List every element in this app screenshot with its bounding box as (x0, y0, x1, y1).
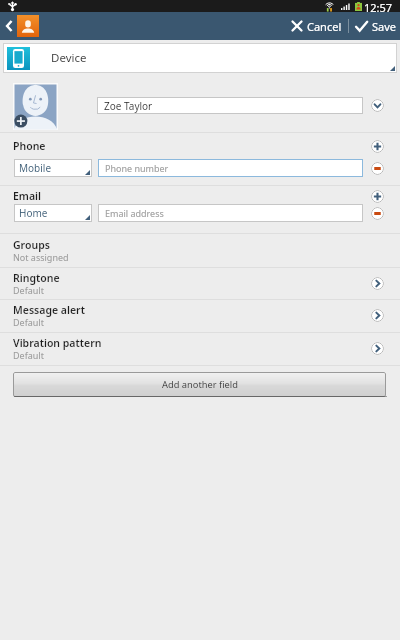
button[interactable]: Zoe Taylor (97, 97, 363, 114)
staticText: Message alert (13, 303, 85, 317)
button[interactable]: Cancel (283, 12, 348, 40)
button[interactable]: Home (14, 204, 92, 222)
button[interactable]: Add contact photo (13, 83, 58, 130)
staticText: Add another field (162, 378, 238, 391)
staticText: Save (372, 19, 397, 34)
staticText: Default (13, 316, 44, 328)
staticText: Ringtone (13, 271, 60, 285)
button[interactable]: Open Message alert (371, 309, 384, 322)
staticText: Vibration pattern (13, 336, 102, 350)
button[interactable]: Remove email (371, 207, 384, 220)
button[interactable]: Groups (0, 234, 400, 266)
button[interactable]: Add email (371, 190, 384, 203)
staticText: Not assigned (13, 251, 69, 263)
staticText: Zoe Taylor (104, 99, 153, 113)
staticText: Email address (105, 207, 164, 219)
button[interactable]: Open Vibration pattern (371, 342, 384, 355)
button[interactable]: Ringtone (0, 267, 400, 299)
button[interactable]: Save (349, 12, 400, 40)
staticText: Default (13, 349, 44, 361)
button[interactable]: Email address (98, 204, 363, 222)
button[interactable]: Device (3, 43, 397, 73)
staticText: Device (51, 50, 87, 66)
staticText: Groups (13, 238, 50, 252)
button[interactable]: Message alert (0, 299, 400, 331)
button[interactable]: Add phone (371, 140, 384, 153)
staticText: Email (13, 189, 42, 203)
staticText: Home (19, 206, 48, 220)
button[interactable]: Remove phone (371, 162, 384, 175)
button[interactable]: Back (0, 12, 17, 40)
button[interactable]: Open Ringtone (371, 277, 384, 290)
staticText: Phone number (105, 162, 169, 174)
staticText: Phone (13, 139, 46, 153)
staticText: 12:57 (364, 0, 393, 12)
button[interactable]: Add another field (13, 372, 386, 397)
staticText: Cancel (307, 19, 342, 34)
button[interactable]: Mobile (14, 159, 92, 177)
button[interactable]: Vibration pattern (0, 332, 400, 364)
staticText: Default (13, 284, 44, 296)
button[interactable]: Phone number (98, 159, 363, 177)
staticText: Mobile (19, 161, 52, 175)
button[interactable]: Expand name (371, 99, 384, 112)
